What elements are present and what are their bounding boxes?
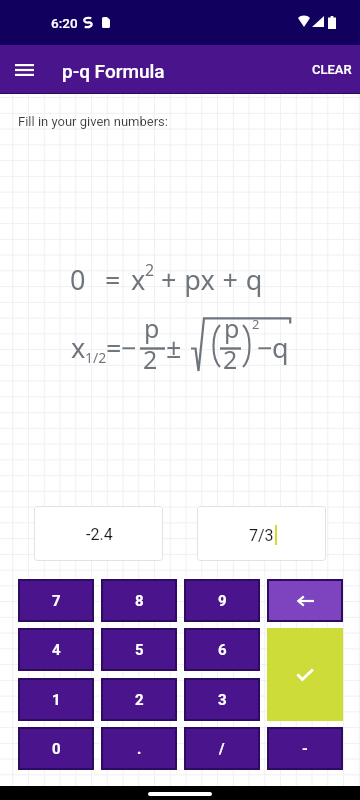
staticText: 0 (52, 740, 61, 758)
staticText: − (257, 329, 273, 366)
staticText: = (106, 329, 122, 366)
staticText: 6:20 (51, 15, 78, 31)
staticText: . (137, 740, 142, 758)
staticText: p-q Formula (62, 60, 165, 82)
staticText: Fill in your given numbers: (18, 114, 168, 129)
button[interactable]: Confirm (267, 628, 343, 721)
staticText: 7/3 (249, 526, 274, 545)
button[interactable]: 2 (101, 678, 177, 721)
button[interactable]: 7/3 (197, 506, 326, 561)
button[interactable]: CLEAR (302, 52, 360, 87)
button[interactable]: 0 (18, 727, 94, 770)
staticText: 5 (135, 641, 144, 659)
button[interactable]: 6 (184, 628, 260, 671)
button[interactable]: 9 (184, 579, 260, 622)
staticText: 2 (145, 259, 155, 281)
staticText: 8 (135, 592, 144, 610)
button[interactable]: Backspace (267, 579, 343, 622)
button[interactable]: -2.4 (34, 506, 163, 561)
button[interactable]: 3 (184, 678, 260, 721)
staticText: q (272, 329, 289, 366)
staticText: / (219, 740, 225, 758)
button[interactable]: 1 (18, 678, 94, 721)
button[interactable]: 7 (18, 579, 94, 622)
staticText: 7 (52, 592, 61, 610)
staticText: 2 (135, 691, 144, 709)
staticText: -2.4 (86, 525, 113, 544)
staticText: ± (166, 329, 182, 366)
staticText: 9 (218, 592, 227, 610)
staticText: 2 (143, 342, 158, 376)
staticText: 4 (52, 641, 61, 659)
button[interactable]: 4 (18, 628, 94, 671)
staticText: − (121, 329, 137, 366)
button[interactable]: 5 (101, 628, 177, 671)
staticText: 0 (70, 261, 86, 298)
button[interactable]: . (101, 727, 177, 770)
staticText: CLEAR (312, 62, 352, 77)
staticText: - (302, 740, 308, 758)
button[interactable]: 8 (101, 579, 177, 622)
staticText: 2 (223, 342, 238, 376)
button[interactable]: Menu (8, 54, 40, 86)
staticText: = (105, 261, 121, 298)
staticText: p (144, 311, 160, 345)
staticText: 1/2 (85, 348, 107, 367)
staticText: x (71, 329, 86, 366)
staticText: p (224, 311, 240, 345)
staticText: 1 (52, 691, 61, 709)
staticText: 3 (218, 691, 227, 709)
staticText: x (131, 261, 146, 298)
staticText: + px + q (161, 261, 263, 298)
staticText: 6 (218, 641, 227, 659)
button[interactable]: / (184, 727, 260, 770)
button[interactable]: - (267, 727, 343, 770)
staticText: 2 (252, 315, 260, 333)
